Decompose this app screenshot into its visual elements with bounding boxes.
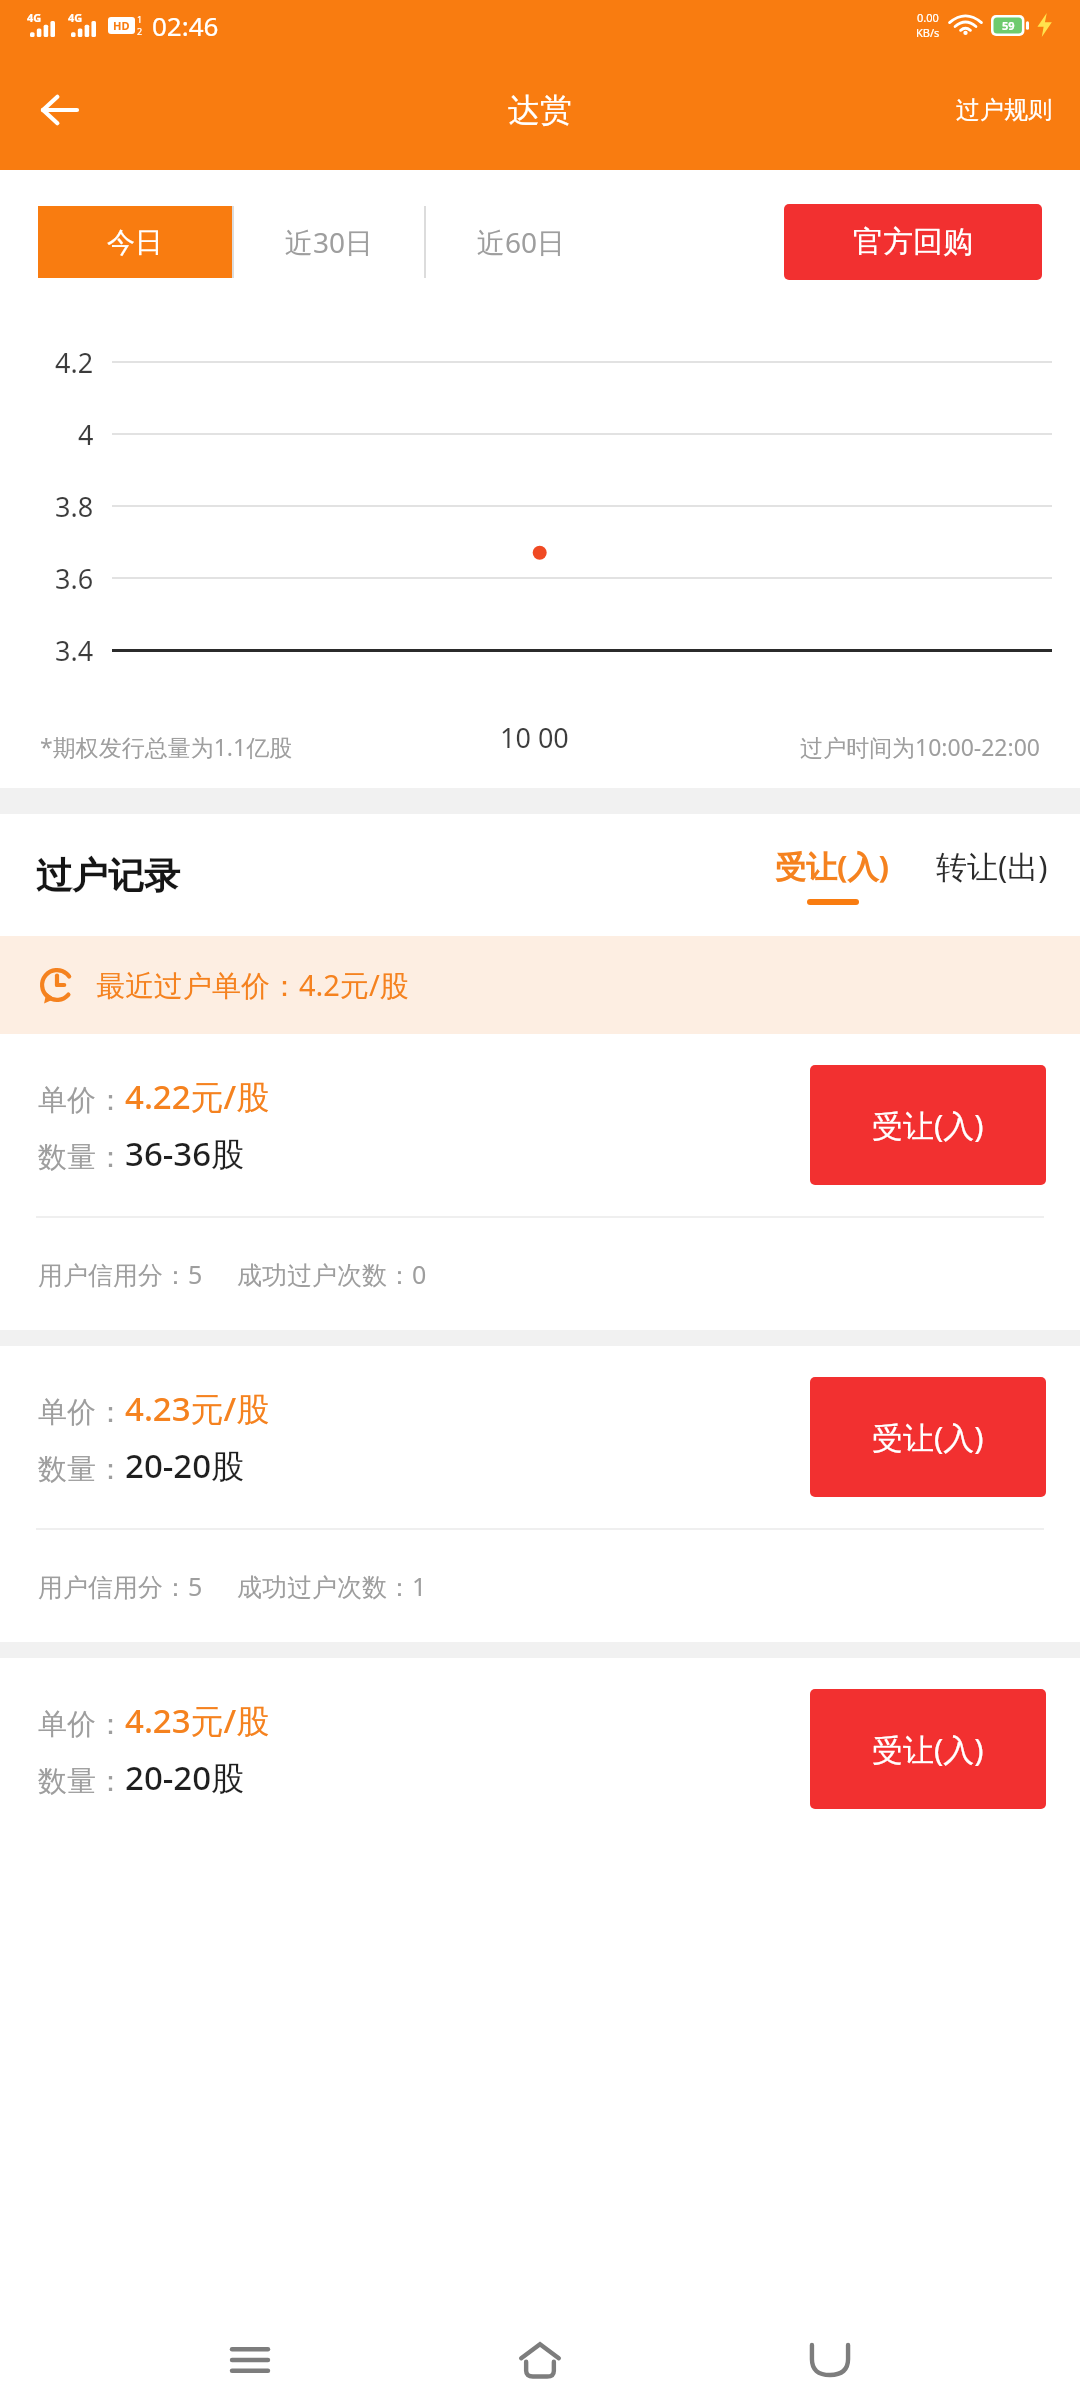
staticText: 近30日 bbox=[285, 223, 374, 261]
button[interactable]: 转让(出) bbox=[936, 845, 1048, 905]
staticText: KB/s bbox=[916, 25, 940, 40]
button[interactable]: 受让(入) bbox=[775, 845, 890, 905]
button[interactable]: 近30日 bbox=[234, 206, 424, 278]
staticText: 转让(出) bbox=[936, 845, 1048, 887]
button[interactable]: 受让(入) bbox=[810, 1065, 1046, 1185]
staticText: 今日 bbox=[107, 225, 163, 260]
staticText: 36-36股 bbox=[125, 1131, 245, 1176]
staticText: 4G bbox=[27, 10, 42, 25]
button[interactable]: 受让(入) bbox=[810, 1689, 1046, 1809]
staticText: HD bbox=[113, 18, 130, 33]
staticText: 4.23元/股 bbox=[125, 1698, 270, 1743]
staticText: 数量： bbox=[38, 1763, 125, 1800]
staticText: 4.22元/股 bbox=[125, 1074, 270, 1119]
staticText: 4G bbox=[68, 10, 83, 25]
staticText: 过户规则 bbox=[956, 95, 1052, 125]
staticText: 10 00 bbox=[500, 719, 569, 756]
staticText: 过户时间为10:00-22:00 bbox=[800, 731, 1040, 762]
button[interactable]: 过户规则 bbox=[928, 77, 1080, 143]
staticText: 数量： bbox=[38, 1451, 125, 1488]
staticText: 数量： bbox=[38, 1139, 125, 1176]
staticText: 用户信用分：5 bbox=[38, 1569, 203, 1603]
staticText: 近60日 bbox=[477, 223, 566, 261]
staticText: 4.2 bbox=[55, 344, 94, 381]
staticText: 2 bbox=[137, 25, 143, 37]
staticText: *期权发行总量为1.1亿股 bbox=[40, 731, 293, 762]
staticText: 成功过户次数：0 bbox=[237, 1257, 427, 1291]
staticText: 4 bbox=[78, 416, 94, 453]
button[interactable]: 官方回购 bbox=[784, 204, 1042, 280]
staticText: 单价： bbox=[38, 1082, 125, 1119]
staticText: 3.6 bbox=[55, 560, 94, 597]
staticText: 受让(入) bbox=[872, 1104, 984, 1146]
staticText: 单价： bbox=[38, 1394, 125, 1431]
staticText: 成功过户次数：1 bbox=[237, 1569, 427, 1603]
staticText: 官方回购 bbox=[853, 223, 973, 261]
staticText: 3.4 bbox=[55, 632, 94, 669]
button[interactable]: Back bbox=[22, 73, 96, 147]
button[interactable]: 受让(入) bbox=[810, 1377, 1046, 1497]
staticText: 用户信用分：5 bbox=[38, 1257, 203, 1291]
staticText: 单价： bbox=[38, 1706, 125, 1743]
staticText: 20-20股 bbox=[125, 1755, 245, 1800]
staticText: 受让(入) bbox=[872, 1728, 984, 1770]
staticText: 最近过户单价：4.2元/股 bbox=[96, 965, 409, 1005]
staticText: 受让(入) bbox=[775, 845, 890, 887]
staticText: 受让(入) bbox=[872, 1416, 984, 1458]
button[interactable]: 近60日 bbox=[426, 206, 616, 278]
button[interactable]: Home bbox=[500, 2320, 580, 2400]
staticText: 0.00 bbox=[917, 10, 939, 25]
staticText: 02:46 bbox=[152, 8, 219, 43]
staticText: 达赏 bbox=[508, 90, 572, 130]
staticText: 20-20股 bbox=[125, 1443, 245, 1488]
button[interactable]: Back bbox=[790, 2320, 870, 2400]
staticText: 59 bbox=[1002, 18, 1015, 33]
button[interactable]: Recent apps bbox=[210, 2320, 290, 2400]
staticText: 1 bbox=[137, 13, 143, 25]
button[interactable]: 今日 bbox=[38, 206, 232, 278]
staticText: 4.23元/股 bbox=[125, 1386, 270, 1431]
staticText: 3.8 bbox=[55, 488, 94, 525]
staticText: 过户记录 bbox=[36, 853, 180, 898]
